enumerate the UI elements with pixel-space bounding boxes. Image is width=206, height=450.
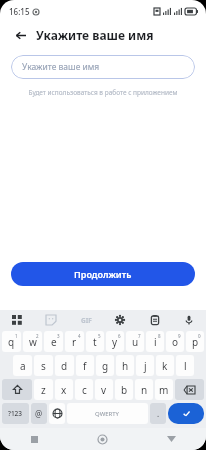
- staticText: Укажите ваше имя: [36, 27, 154, 43]
- staticText: p: [192, 335, 199, 349]
- staticText: x: [61, 383, 67, 397]
- button[interactable]: Stickers: [42, 311, 60, 329]
- button[interactable]: v: [95, 379, 113, 400]
- button[interactable]: Voice input: [180, 311, 198, 329]
- staticText: y: [112, 335, 118, 349]
- staticText: b: [121, 383, 128, 397]
- staticText: GIF: [81, 316, 92, 325]
- staticText: d: [61, 359, 68, 373]
- button[interactable]: x: [55, 379, 73, 400]
- staticText: Укажите ваше имя: [22, 61, 100, 73]
- staticText: Продолжить: [74, 268, 132, 280]
- staticText: 4: [78, 333, 81, 339]
- button[interactable]: Recents: [0, 428, 68, 450]
- staticText: ?123: [8, 409, 23, 418]
- staticText: 1: [15, 333, 18, 339]
- button[interactable]: Shift: [2, 379, 32, 400]
- staticText: QWERTY: [95, 410, 120, 418]
- button[interactable]: QWERTY: [67, 403, 148, 424]
- staticText: t: [93, 335, 97, 349]
- staticText: j: [144, 359, 147, 373]
- button[interactable]: t: [86, 331, 104, 352]
- staticText: q: [8, 335, 15, 349]
- button[interactable]: m: [155, 379, 173, 400]
- button[interactable]: k: [156, 355, 174, 376]
- staticText: 8: [158, 333, 161, 339]
- staticText: .: [157, 408, 160, 419]
- button[interactable]: Back: [137, 428, 206, 450]
- staticText: u: [132, 335, 139, 349]
- staticText: c: [82, 383, 87, 397]
- button[interactable]: z: [34, 379, 53, 400]
- button[interactable]: Change language: [49, 403, 65, 424]
- button[interactable]: Продолжить: [11, 262, 195, 286]
- staticText: n: [141, 383, 148, 397]
- button[interactable]: b: [115, 379, 133, 400]
- button[interactable]: i: [146, 331, 164, 352]
- staticText: Будет использоваться в работе с приложен…: [28, 88, 178, 97]
- button[interactable]: n: [135, 379, 153, 400]
- button[interactable]: w: [23, 331, 42, 352]
- staticText: r: [72, 335, 77, 349]
- staticText: a: [20, 359, 26, 373]
- staticText: v: [101, 383, 107, 397]
- staticText: @: [35, 408, 43, 419]
- button[interactable]: Enter: [168, 403, 204, 424]
- staticText: 0: [198, 333, 201, 339]
- button[interactable]: d: [55, 355, 74, 376]
- button[interactable]: q: [2, 331, 21, 352]
- button[interactable]: h: [116, 355, 134, 376]
- staticText: m: [159, 383, 169, 397]
- staticText: g: [102, 359, 109, 373]
- staticText: 3: [57, 333, 60, 339]
- staticText: s: [41, 359, 46, 373]
- button[interactable]: .: [150, 403, 166, 424]
- button[interactable]: p: [186, 331, 204, 352]
- button[interactable]: y: [106, 331, 124, 352]
- staticText: k: [162, 359, 168, 373]
- staticText: l: [184, 359, 187, 373]
- button[interactable]: ?123: [2, 403, 29, 424]
- button[interactable]: a: [13, 355, 32, 376]
- staticText: 5: [98, 333, 101, 339]
- button[interactable]: Settings: [111, 311, 129, 329]
- staticText: 7: [138, 333, 141, 339]
- staticText: f: [83, 359, 87, 373]
- button[interactable]: c: [75, 379, 93, 400]
- button[interactable]: Укажите ваше имя: [11, 55, 195, 79]
- button[interactable]: s: [34, 355, 53, 376]
- button[interactable]: g: [96, 355, 114, 376]
- staticText: w: [29, 335, 37, 349]
- button[interactable]: r: [65, 331, 84, 352]
- staticText: h: [122, 359, 129, 373]
- staticText: 16:15: [9, 6, 30, 17]
- button[interactable]: o: [166, 331, 184, 352]
- staticText: 9: [178, 333, 181, 339]
- staticText: 6: [118, 333, 121, 339]
- button[interactable]: Back: [11, 26, 29, 44]
- staticText: o: [172, 335, 179, 349]
- button[interactable]: Apps: [8, 311, 26, 329]
- staticText: e: [51, 335, 57, 349]
- button[interactable]: u: [126, 331, 144, 352]
- staticText: 2: [36, 333, 39, 339]
- button[interactable]: l: [176, 355, 194, 376]
- button[interactable]: Clipboard: [146, 311, 164, 329]
- staticText: z: [41, 383, 46, 397]
- button[interactable]: e: [44, 331, 63, 352]
- button[interactable]: Home: [68, 428, 137, 450]
- button[interactable]: f: [76, 355, 94, 376]
- button[interactable]: @: [31, 403, 47, 424]
- button[interactable]: GIF: [77, 311, 95, 329]
- button[interactable]: j: [136, 355, 154, 376]
- staticText: i: [154, 335, 157, 349]
- button[interactable]: Backspace: [175, 379, 204, 400]
